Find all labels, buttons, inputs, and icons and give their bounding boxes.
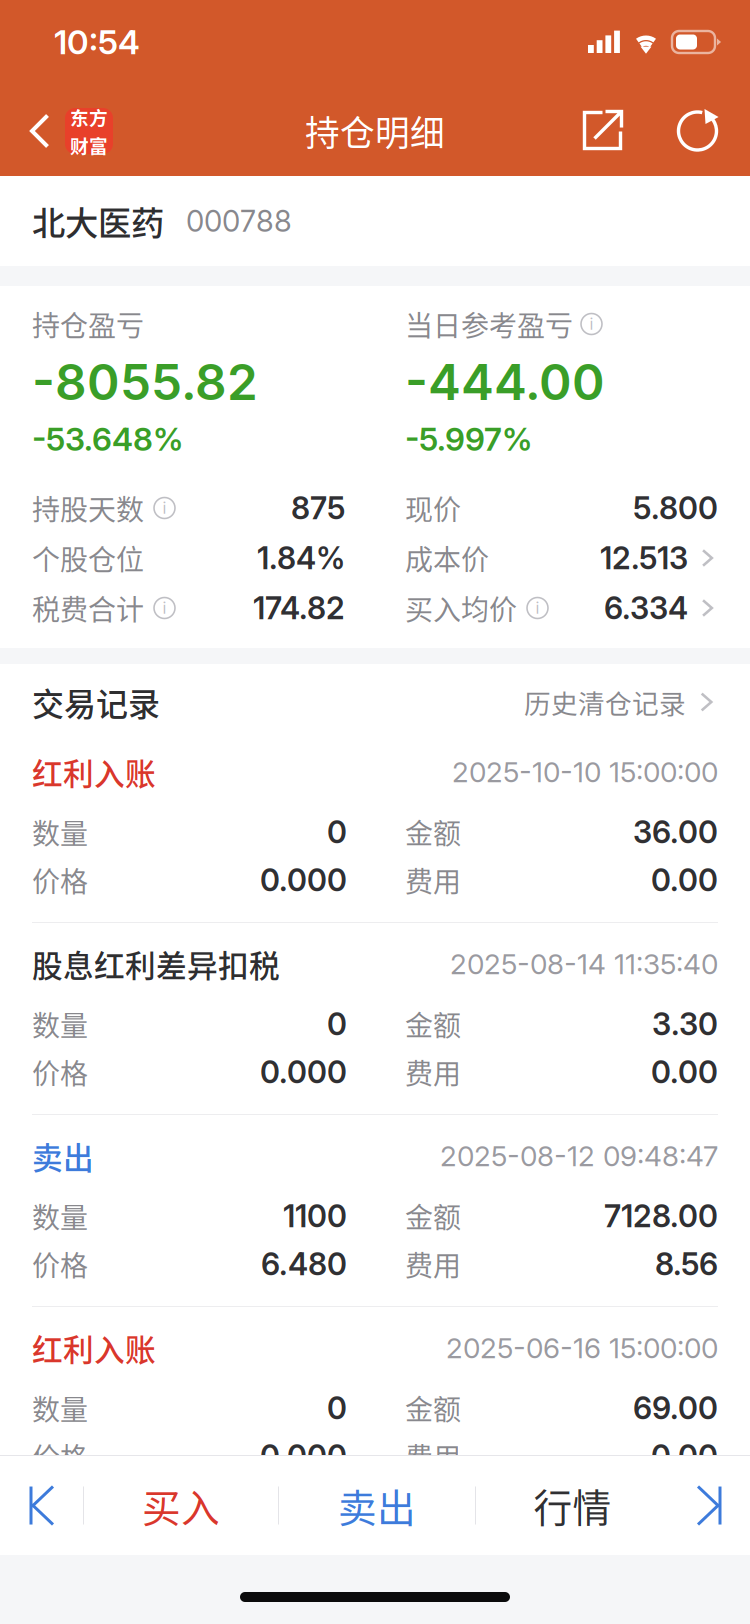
staticText: 东方 [70,103,108,130]
staticText: 6.480 [261,1245,347,1282]
staticText: 0.00 [651,1437,718,1474]
staticText: 0.000 [260,1053,347,1090]
staticText: 历史清仓记录 [524,683,686,721]
button[interactable]: 行情 [476,1456,669,1555]
staticText: 卖出 [338,1477,416,1533]
staticText: 0 [327,1389,347,1426]
staticText: 875 [291,489,345,526]
staticText: 2025-10-10 15:00:00 [452,755,718,789]
button[interactable]: 买入 [84,1456,278,1555]
staticText: -5.997% [405,420,532,458]
staticText: 69.00 [633,1389,718,1426]
staticText: 当日参考盈亏 [405,304,573,344]
staticText: 2025-08-12 09:48:47 [440,1139,718,1173]
staticText: 3.30 [652,1005,718,1042]
staticText: 交易记录 [32,679,160,725]
staticText: 0.00 [651,861,718,898]
button[interactable]: Last [669,1456,750,1555]
staticText: 价格 [32,1052,88,1092]
staticText: 数量 [32,1004,88,1044]
staticText: 费用 [405,1244,461,1284]
staticText: 6.334 [604,589,688,626]
staticText: 持仓明细 [305,106,445,156]
staticText: 成本价 [405,538,489,578]
staticText: 10:54 [54,22,140,62]
staticText: 金额 [405,1196,461,1236]
staticText: -444.00 [405,352,605,412]
staticText: 股息红利差异扣税 [32,942,280,986]
staticText: 财富 [70,131,108,158]
staticText: 金额 [405,1004,461,1044]
button[interactable]: First [0,1456,83,1555]
staticText: 税费合计 [32,588,144,628]
staticText: 1100 [283,1197,347,1234]
staticText: 金额 [405,1388,461,1428]
staticText: 持仓盈亏 [32,304,144,344]
staticText: 174.82 [253,589,345,626]
staticText: 数量 [32,1196,88,1236]
staticText: 买入均价 [405,588,517,628]
staticText: 36.00 [633,813,718,850]
staticText: 数量 [32,812,88,852]
staticText: i [589,314,593,334]
staticText: 12.513 [600,539,688,576]
staticText: 买入 [142,1477,220,1533]
staticText: 红利入账 [32,750,156,794]
staticText: 2025-06-16 15:00:00 [446,1331,718,1365]
staticText: 北大医药 [32,197,164,245]
staticText: 行情 [533,1477,611,1533]
staticText: 费用 [405,1436,461,1476]
staticText: 5.800 [633,489,718,526]
button[interactable]: 卖出 [279,1456,475,1555]
staticText: 8.56 [655,1245,718,1282]
button[interactable]: Back [0,85,127,177]
staticText: i [162,598,166,618]
staticText: 0.000 [260,1437,347,1474]
staticText: i [535,598,539,618]
staticText: 0.00 [651,1053,718,1090]
staticText: 7128.00 [604,1197,718,1234]
staticText: 0 [327,1005,347,1042]
button[interactable]: Share [556,85,651,177]
staticText: 红利入账 [32,1326,156,1370]
staticText: 1.84% [257,539,345,576]
staticText: 价格 [32,860,88,900]
staticText: 2025-08-14 11:35:40 [450,947,718,981]
staticText: 0.000 [260,861,347,898]
staticText: 价格 [32,1244,88,1284]
staticText: 持股天数 [32,488,144,528]
staticText: 金额 [405,812,461,852]
staticText: 现价 [405,488,461,528]
staticText: 0 [327,813,347,850]
staticText: 000788 [186,203,292,239]
staticText: 数量 [32,1388,88,1428]
staticText: -53.648% [32,420,183,458]
staticText: 费用 [405,860,461,900]
staticText: 个股仓位 [32,538,144,578]
staticText: 卖出 [32,1134,94,1178]
staticText: i [162,498,166,518]
button[interactable]: 历史清仓记录 [524,664,718,740]
staticText: -8055.82 [32,352,258,412]
button[interactable]: Refresh [651,85,746,177]
staticText: 费用 [405,1052,461,1092]
staticText: 价格 [32,1436,88,1476]
